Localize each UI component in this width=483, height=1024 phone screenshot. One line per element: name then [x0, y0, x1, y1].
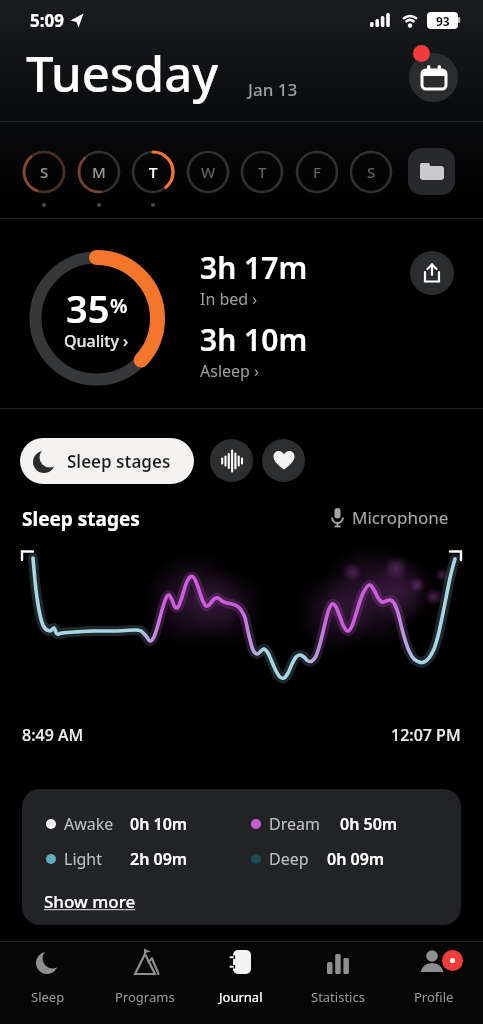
button[interactable]: M	[77, 150, 121, 194]
staticText: Programs	[115, 988, 175, 1006]
button[interactable]: Programs	[103, 948, 187, 1006]
staticText: In bed ›	[200, 288, 258, 310]
button[interactable]: Show more	[44, 890, 136, 913]
button[interactable]: S	[349, 150, 393, 194]
button[interactable]	[410, 251, 454, 295]
staticText: Awake	[64, 813, 114, 835]
button[interactable]: Microphone	[330, 506, 449, 529]
button[interactable]	[262, 439, 305, 482]
button[interactable]: Profile	[392, 948, 476, 1006]
staticText: 0h 09m	[327, 848, 385, 870]
staticText: 0h 10m	[130, 813, 188, 835]
button[interactable]: T	[131, 150, 175, 194]
button[interactable]: 3h 17m	[200, 247, 308, 288]
staticText: Sleep	[31, 988, 65, 1006]
staticText: Sleep stages	[22, 506, 140, 532]
button[interactable]: Sleep	[6, 948, 90, 1006]
staticText: Tuesday	[26, 40, 219, 107]
button[interactable]	[210, 439, 253, 482]
button[interactable]: 35	[28, 250, 165, 387]
button[interactable]: Statistics	[296, 948, 380, 1006]
staticText: W	[201, 162, 216, 182]
staticText: Statistics	[311, 988, 365, 1006]
staticText: M	[92, 162, 106, 182]
button[interactable]: T	[240, 150, 284, 194]
staticText: F	[313, 162, 321, 182]
button[interactable]: W	[186, 150, 230, 194]
button[interactable]: Sleep stages	[20, 438, 194, 484]
staticText: 8:49 AM	[22, 724, 84, 746]
button[interactable]	[408, 148, 455, 195]
staticText: S	[367, 162, 376, 182]
staticText: T	[149, 162, 158, 182]
staticText: %	[110, 292, 128, 319]
button[interactable]: F	[295, 150, 339, 194]
staticText: S	[40, 162, 49, 182]
staticText: 35	[66, 282, 110, 334]
staticText: T	[258, 162, 267, 182]
staticText: Journal	[219, 988, 263, 1006]
button[interactable]: 3h 10m	[200, 319, 308, 360]
button[interactable]	[409, 53, 458, 102]
staticText: Sleep stages	[67, 450, 171, 473]
staticText: Light	[64, 848, 103, 870]
staticText: Quality ›	[64, 330, 129, 352]
staticText: 2h 09m	[130, 848, 188, 870]
staticText: Dream	[269, 813, 320, 835]
button[interactable]: S	[22, 150, 66, 194]
staticText: Microphone	[352, 506, 449, 529]
button[interactable]: Journal	[199, 948, 283, 1006]
staticText: 93	[436, 13, 450, 29]
staticText: 0h 50m	[340, 813, 398, 835]
staticText: Jan 13	[248, 78, 298, 101]
staticText: 5:09	[30, 9, 64, 32]
staticText: Profile	[414, 988, 454, 1006]
staticText: Deep	[269, 848, 309, 870]
staticText: 12:07 PM	[391, 724, 461, 746]
staticText: Asleep ›	[200, 360, 260, 382]
